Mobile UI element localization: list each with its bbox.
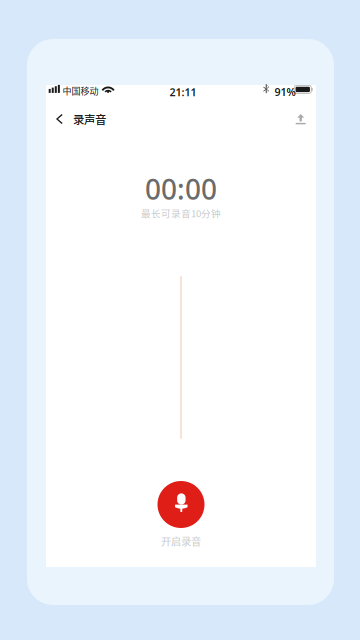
button[interactable]: 开启录音 xyxy=(126,481,236,547)
staticText: 21:11 xyxy=(169,85,196,99)
staticText: 00:00 xyxy=(145,170,217,208)
button[interactable]: Upload xyxy=(285,105,316,133)
staticText: 91% xyxy=(274,85,295,99)
button[interactable]: 录声音 xyxy=(46,105,118,133)
staticText: 中国移动 xyxy=(62,84,98,97)
staticText: 录声音 xyxy=(73,111,106,127)
staticText: 开启录音 xyxy=(161,534,201,548)
staticText: 最长可录音10分钟 xyxy=(141,206,221,220)
